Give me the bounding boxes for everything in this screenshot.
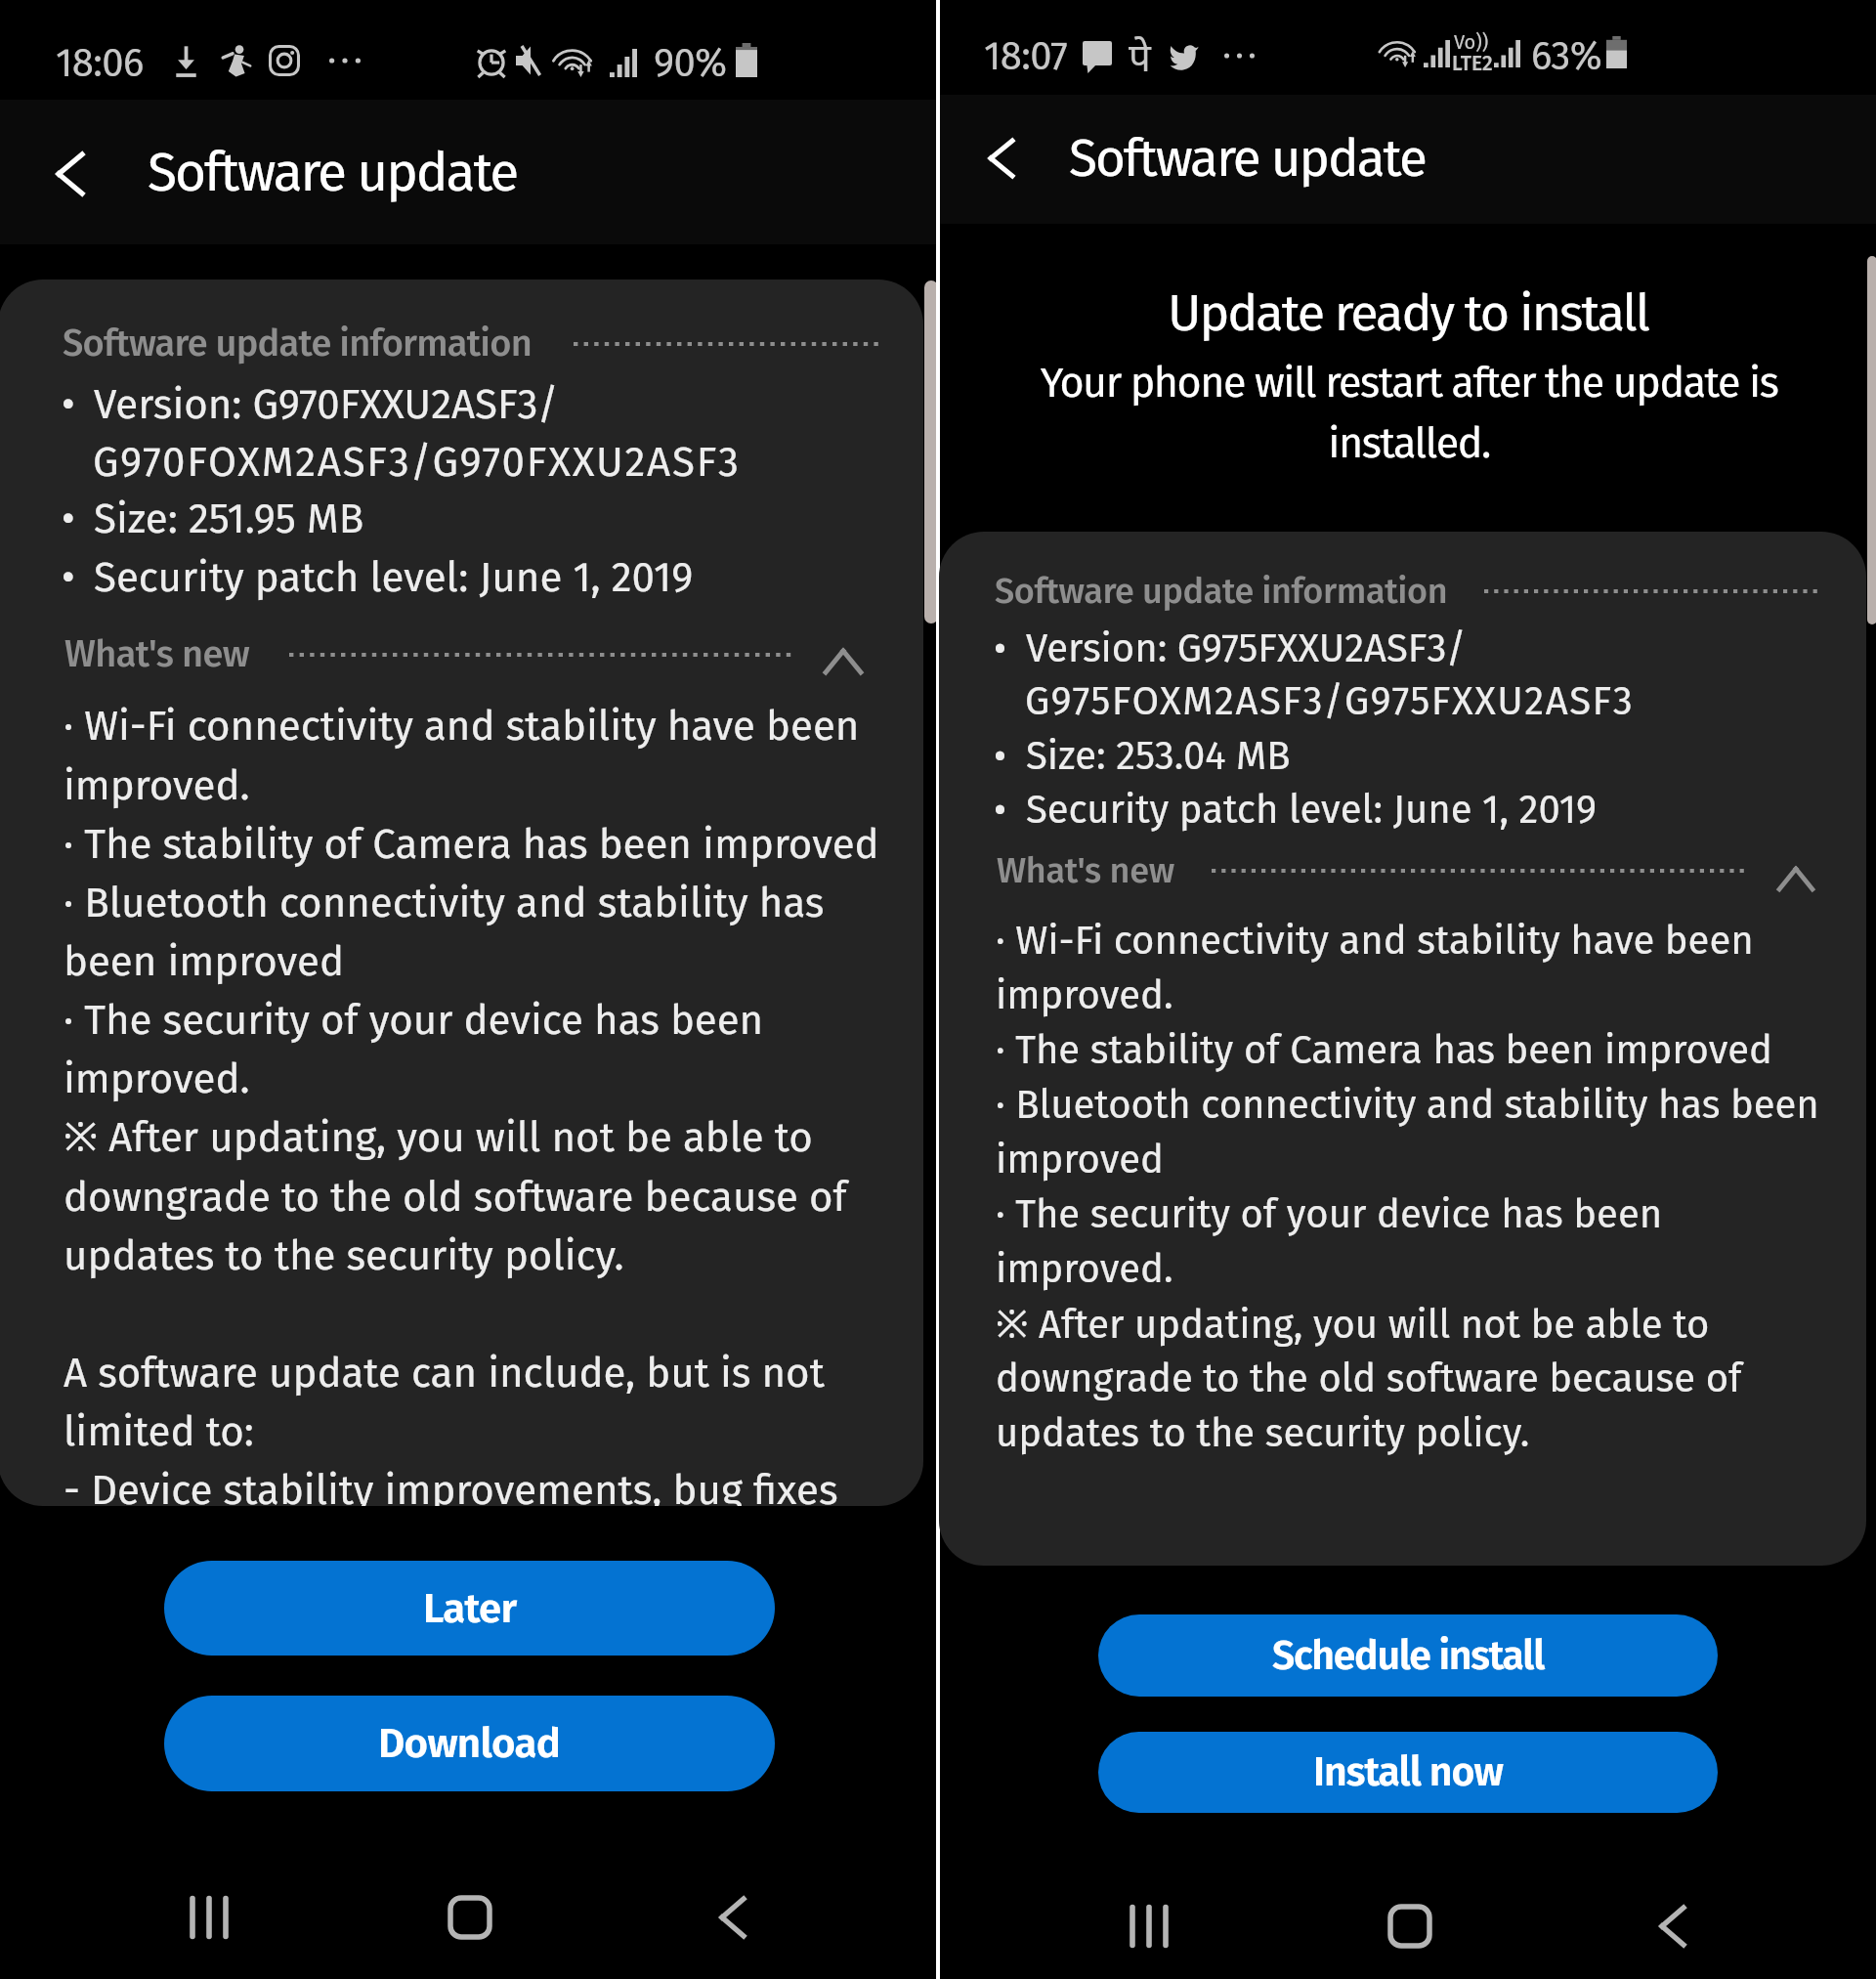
staticText: Software update information bbox=[63, 321, 533, 366]
staticText: Size: 253.04 MB bbox=[1026, 733, 1291, 780]
staticText: • bbox=[994, 733, 1006, 780]
button[interactable]: Install now bbox=[1098, 1732, 1718, 1813]
staticText: What's new bbox=[64, 631, 250, 676]
staticText: · Wi-Fi connectivity and stability have … bbox=[996, 918, 1836, 1457]
button[interactable]: Collapse section bbox=[1757, 830, 1835, 908]
staticText: Version: G970FXXU2ASF3/ bbox=[94, 380, 559, 429]
button[interactable]: Schedule install bbox=[1098, 1614, 1718, 1697]
staticText: Later bbox=[423, 1584, 517, 1633]
staticText: पे bbox=[1129, 29, 1151, 82]
staticText: Download bbox=[378, 1719, 561, 1768]
staticText: Size: 251.95 MB bbox=[94, 495, 364, 543]
staticText: Software update information bbox=[995, 570, 1448, 612]
staticText: Vo)) bbox=[1454, 30, 1489, 54]
button[interactable]: Navigate up bbox=[15, 130, 103, 218]
staticText: 18:06 bbox=[56, 40, 144, 87]
staticText: Security patch level: June 1, 2019 bbox=[94, 553, 694, 602]
staticText: G970FOXM2ASF3/G970FXXU2ASF3 bbox=[93, 438, 741, 487]
button[interactable]: Recent apps bbox=[165, 1873, 253, 1961]
button[interactable]: Back bbox=[678, 1873, 766, 1961]
staticText: Software update bbox=[1069, 127, 1426, 190]
staticText: Your phone will restart after the update… bbox=[989, 358, 1829, 468]
staticText: LTE2 bbox=[1452, 51, 1493, 75]
staticText: 90% bbox=[654, 40, 727, 87]
staticText: Schedule install bbox=[1272, 1632, 1545, 1680]
staticText: · Wi-Fi connectivity and stability have … bbox=[64, 702, 916, 1506]
staticText: G975FOXM2ASF3/G975FXXU2ASF3 bbox=[1025, 678, 1635, 725]
button[interactable]: Home bbox=[1366, 1882, 1454, 1970]
button[interactable]: Back bbox=[1618, 1882, 1706, 1970]
staticText: What's new bbox=[997, 849, 1174, 891]
staticText: Security patch level: June 1, 2019 bbox=[1026, 787, 1598, 834]
staticText: Update ready to install bbox=[940, 282, 1876, 343]
staticText: • bbox=[994, 625, 1006, 672]
staticText: Version: G975FXXU2ASF3/ bbox=[1026, 625, 1467, 672]
staticText: • bbox=[62, 553, 75, 602]
button[interactable]: Collapse section bbox=[804, 612, 882, 690]
button[interactable]: Navigate up bbox=[947, 114, 1035, 202]
staticText: • bbox=[62, 380, 75, 429]
button[interactable]: Home bbox=[426, 1873, 514, 1961]
staticText: 18:07 bbox=[984, 33, 1068, 80]
button[interactable]: Recent apps bbox=[1105, 1882, 1193, 1970]
staticText: 63% bbox=[1531, 33, 1602, 80]
staticText: Software update bbox=[148, 141, 518, 205]
button[interactable]: Download bbox=[164, 1696, 775, 1791]
staticText: • bbox=[62, 495, 75, 543]
staticText: Install now bbox=[1313, 1748, 1503, 1796]
staticText: • bbox=[994, 787, 1006, 834]
button[interactable]: Later bbox=[164, 1561, 775, 1656]
